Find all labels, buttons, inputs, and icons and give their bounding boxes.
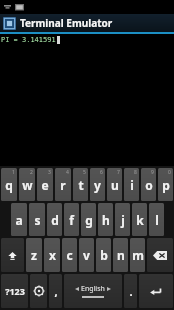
button[interactable]: g bbox=[81, 203, 96, 236]
staticText: d bbox=[51, 212, 59, 228]
staticText: w bbox=[22, 177, 33, 193]
staticText: l bbox=[155, 212, 159, 228]
button[interactable]: j bbox=[115, 203, 130, 236]
button[interactable]: y bbox=[90, 168, 105, 201]
button[interactable]: Backspace bbox=[147, 238, 173, 272]
staticText: t bbox=[78, 177, 84, 193]
button[interactable]: r bbox=[55, 168, 71, 201]
button[interactable]: a bbox=[11, 203, 27, 236]
button[interactable]: f bbox=[64, 203, 79, 236]
staticText: 9 bbox=[151, 169, 154, 176]
staticText: o bbox=[145, 177, 153, 193]
staticText: ?123 bbox=[5, 285, 25, 297]
button[interactable]: x bbox=[44, 238, 60, 272]
staticText: , bbox=[54, 284, 58, 299]
button[interactable]: Enter bbox=[139, 274, 173, 308]
staticText: a bbox=[15, 212, 23, 228]
button[interactable]: . bbox=[124, 274, 137, 308]
button[interactable]: Shift bbox=[1, 238, 24, 272]
staticText: b bbox=[100, 247, 108, 263]
button[interactable]: w bbox=[19, 168, 35, 201]
staticText: 1 bbox=[12, 169, 15, 176]
button[interactable]: i bbox=[124, 168, 139, 201]
staticText: 2 bbox=[30, 169, 33, 176]
staticText: j bbox=[121, 212, 125, 228]
button[interactable]: k bbox=[132, 203, 147, 236]
button[interactable]: u bbox=[107, 168, 122, 201]
button[interactable]: s bbox=[29, 203, 45, 236]
button[interactable]: p bbox=[158, 168, 173, 201]
staticText: Terminal Emulator bbox=[20, 16, 113, 30]
button[interactable]: ?123 bbox=[1, 274, 28, 308]
staticText: c bbox=[66, 247, 73, 263]
button[interactable]: h bbox=[98, 203, 113, 236]
staticText: s bbox=[34, 212, 41, 228]
staticText: i bbox=[130, 177, 134, 193]
button[interactable]: z bbox=[26, 238, 42, 272]
staticText: PI = 3.141591 bbox=[1, 35, 56, 45]
staticText: y bbox=[94, 177, 101, 193]
staticText: k bbox=[136, 212, 144, 228]
button[interactable]: , bbox=[49, 274, 62, 308]
staticText: English bbox=[81, 284, 105, 294]
staticText: r bbox=[60, 177, 66, 193]
button[interactable]: m bbox=[130, 238, 145, 272]
button[interactable]: l bbox=[149, 203, 164, 236]
button[interactable]: q bbox=[1, 168, 17, 201]
staticText: h bbox=[102, 212, 110, 228]
staticText: v bbox=[83, 247, 90, 263]
staticText: x bbox=[49, 247, 56, 263]
staticText: m bbox=[132, 247, 144, 263]
staticText: f bbox=[69, 212, 74, 228]
button[interactable]: e bbox=[37, 168, 53, 201]
staticText: 0 bbox=[168, 169, 171, 176]
staticText: 8 bbox=[134, 169, 137, 176]
staticText: 4 bbox=[66, 169, 69, 176]
button[interactable]: b bbox=[96, 238, 111, 272]
staticText: u bbox=[111, 177, 119, 193]
staticText: . bbox=[129, 284, 133, 299]
button[interactable]: Input settings bbox=[30, 274, 47, 308]
button[interactable]: Space bbox=[64, 274, 122, 308]
staticText: 7 bbox=[117, 169, 120, 176]
staticText: q bbox=[5, 177, 13, 193]
button[interactable]: n bbox=[113, 238, 128, 272]
button[interactable]: c bbox=[62, 238, 77, 272]
staticText: e bbox=[41, 177, 49, 193]
staticText: n bbox=[117, 247, 125, 263]
staticText: p bbox=[162, 177, 170, 193]
button[interactable]: d bbox=[47, 203, 62, 236]
staticText: 6 bbox=[100, 169, 103, 176]
staticText: g bbox=[85, 212, 93, 228]
button[interactable]: t bbox=[73, 168, 88, 201]
staticText: 3 bbox=[48, 169, 51, 176]
staticText: z bbox=[31, 247, 37, 263]
button[interactable]: v bbox=[79, 238, 94, 272]
button[interactable]: o bbox=[141, 168, 156, 201]
staticText: 5 bbox=[83, 169, 86, 176]
